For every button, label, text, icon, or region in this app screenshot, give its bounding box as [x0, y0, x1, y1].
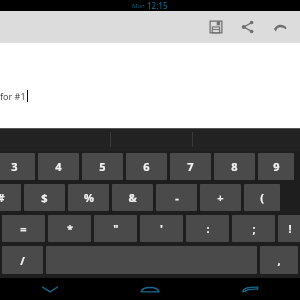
button[interactable]: 3: [0, 153, 35, 180]
staticText: =: [20, 221, 27, 236]
button[interactable]: Undo: [264, 11, 296, 43]
staticText: (: [260, 190, 264, 205]
staticText: ': [160, 221, 163, 236]
button[interactable]: 9: [258, 153, 294, 180]
staticText: for #1: [0, 90, 26, 102]
button[interactable]: #: [0, 184, 21, 211]
staticText: :: [206, 221, 210, 236]
staticText: 7: [187, 159, 194, 174]
button[interactable]: =: [2, 215, 45, 242]
button[interactable]: 8: [214, 153, 255, 180]
staticText: Mon: [132, 2, 147, 10]
staticText: ": [113, 221, 119, 236]
button[interactable]: ": [94, 215, 137, 242]
button[interactable]: !: [278, 215, 300, 242]
staticText: #: [0, 190, 5, 205]
staticText: +: [217, 190, 224, 205]
button[interactable]: Back: [0, 278, 100, 300]
staticText: -: [175, 190, 179, 205]
button[interactable]: -: [156, 184, 197, 211]
staticText: ,: [277, 253, 281, 268]
button[interactable]: ,: [260, 246, 298, 274]
button[interactable]: :: [186, 215, 229, 242]
button[interactable]: +: [200, 184, 241, 211]
button[interactable]: 4: [38, 153, 79, 180]
staticText: 3: [11, 159, 18, 174]
button[interactable]: $: [24, 184, 65, 211]
button[interactable]: 5: [82, 153, 123, 180]
staticText: /: [20, 253, 25, 268]
button[interactable]: 6: [126, 153, 167, 180]
staticText: 5: [99, 159, 106, 174]
button[interactable]: *: [48, 215, 91, 242]
button[interactable]: (: [244, 184, 280, 211]
button[interactable]: Home: [100, 278, 200, 300]
staticText: %: [84, 190, 94, 205]
button[interactable]: Share: [232, 11, 264, 43]
button[interactable]: ': [140, 215, 183, 242]
staticText: 4: [55, 159, 62, 174]
button[interactable]: /: [2, 246, 43, 274]
staticText: 9: [273, 159, 280, 174]
button[interactable]: ;: [232, 215, 275, 242]
button[interactable]: Save: [200, 11, 232, 43]
staticText: &: [128, 190, 137, 205]
staticText: $: [41, 190, 48, 205]
button[interactable]: %: [68, 184, 109, 211]
button[interactable]: 7: [170, 153, 211, 180]
staticText: *: [67, 221, 73, 236]
staticText: 6: [143, 159, 150, 174]
staticText: 12:15: [147, 0, 168, 11]
staticText: !: [288, 221, 292, 236]
button[interactable]: &: [112, 184, 153, 211]
button[interactable]: for #1: [0, 43, 300, 128]
staticText: 8: [231, 159, 238, 174]
staticText: ;: [252, 221, 256, 236]
button[interactable]: Recent apps: [200, 278, 300, 300]
